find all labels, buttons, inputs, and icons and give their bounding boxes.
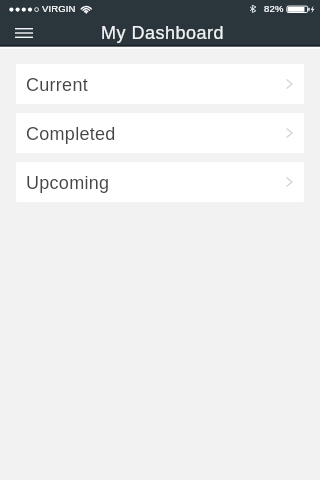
staticText: My Dashboard [101,23,225,43]
button[interactable]: Upcoming [16,162,304,202]
staticText: 82% [264,3,284,14]
staticText: Upcoming [26,173,110,193]
staticText: Current [26,75,88,95]
button[interactable]: Open navigation menu [4,20,44,46]
staticText: VIRGIN [42,3,76,14]
staticText: Completed [26,124,116,144]
button[interactable]: Completed [16,113,304,153]
button[interactable]: Current [16,64,304,104]
